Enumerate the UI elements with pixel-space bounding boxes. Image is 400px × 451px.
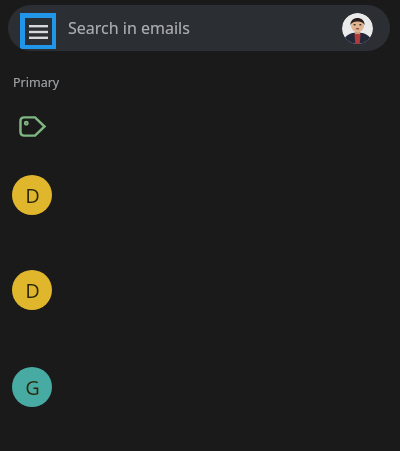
staticText: D [25, 277, 40, 304]
button[interactable]: Sender G [12, 367, 52, 407]
staticText: G [25, 374, 40, 401]
button[interactable]: Label [15, 109, 49, 143]
button[interactable]: Account profile photo [342, 13, 373, 44]
button[interactable]: Sender D [12, 270, 52, 310]
staticText: Search in emails [68, 17, 190, 39]
staticText: Primary [13, 74, 60, 91]
button[interactable]: Open navigation drawer [8, 5, 390, 51]
button[interactable]: Sender D [12, 175, 52, 215]
staticText: D [25, 182, 40, 209]
button[interactable]: Open navigation drawer [20, 13, 56, 49]
